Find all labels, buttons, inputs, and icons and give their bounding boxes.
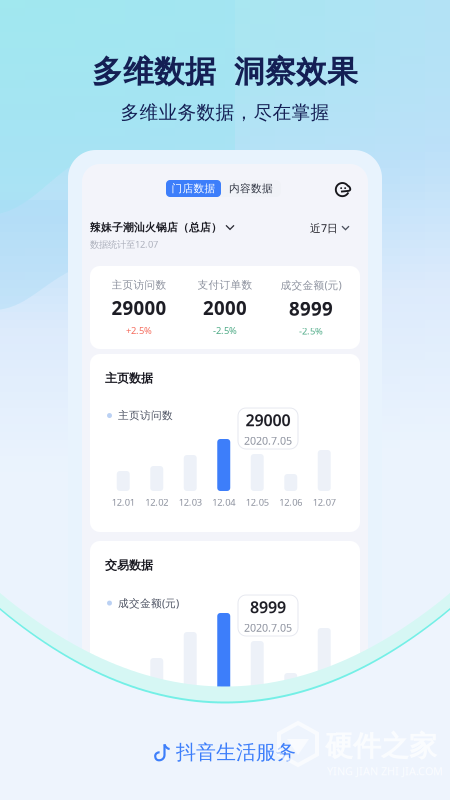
staticText: 12.05 bbox=[246, 496, 269, 508]
staticText: 2020.7.05 bbox=[244, 433, 292, 448]
staticText: 12.03 bbox=[179, 496, 202, 508]
staticText: 近7日 bbox=[310, 221, 338, 235]
staticText: 主页数据 bbox=[105, 371, 153, 386]
staticText: +2.5% bbox=[126, 324, 152, 337]
staticText: 29000 bbox=[111, 295, 166, 320]
button[interactable]: 近7日 bbox=[310, 221, 349, 235]
button[interactable]: 内容数据 bbox=[221, 180, 281, 197]
staticText: 成交金额(元) bbox=[280, 278, 341, 292]
button[interactable]: 辣妹子潮汕火锅店（总店） bbox=[90, 221, 234, 234]
button[interactable]: 客服 bbox=[335, 182, 352, 199]
staticText: 主页访问数 bbox=[111, 278, 166, 291]
staticText: 支付订单数 bbox=[197, 278, 252, 291]
staticText: 数据统计至12.07 bbox=[90, 238, 158, 250]
staticText: 内容数据 bbox=[229, 182, 273, 195]
staticText: 交易数据 bbox=[105, 558, 153, 573]
staticText: 12.04 bbox=[212, 496, 235, 508]
staticText: 门店数据 bbox=[171, 182, 215, 195]
staticText: -2.5% bbox=[213, 324, 237, 337]
staticText: 硬件之家 bbox=[325, 729, 437, 763]
staticText: 主页访问数 bbox=[118, 409, 173, 422]
staticText: 2020.7.05 bbox=[244, 620, 292, 635]
staticText: 抖音生活服务 bbox=[176, 740, 296, 765]
staticText: 多维数据 洞察效果 bbox=[92, 53, 358, 91]
staticText: YING JIAN ZHI JIA.COM bbox=[327, 764, 443, 778]
staticText: 2000 bbox=[203, 295, 247, 320]
staticText: 8999 bbox=[289, 296, 333, 321]
staticText: 29000 bbox=[245, 409, 290, 430]
staticText: 12.06 bbox=[279, 496, 302, 508]
staticText: 成交金额(元) bbox=[118, 596, 179, 610]
staticText: 8999 bbox=[250, 596, 286, 617]
staticText: 12.02 bbox=[145, 496, 168, 508]
staticText: 12.07 bbox=[313, 496, 336, 508]
staticText: 多维业务数据，尽在掌握 bbox=[120, 101, 329, 124]
button[interactable]: 门店数据 bbox=[166, 180, 221, 197]
staticText: 12.01 bbox=[112, 496, 135, 508]
staticText: -2.5% bbox=[299, 325, 323, 337]
staticText: 辣妹子潮汕火锅店（总店） bbox=[90, 221, 222, 234]
